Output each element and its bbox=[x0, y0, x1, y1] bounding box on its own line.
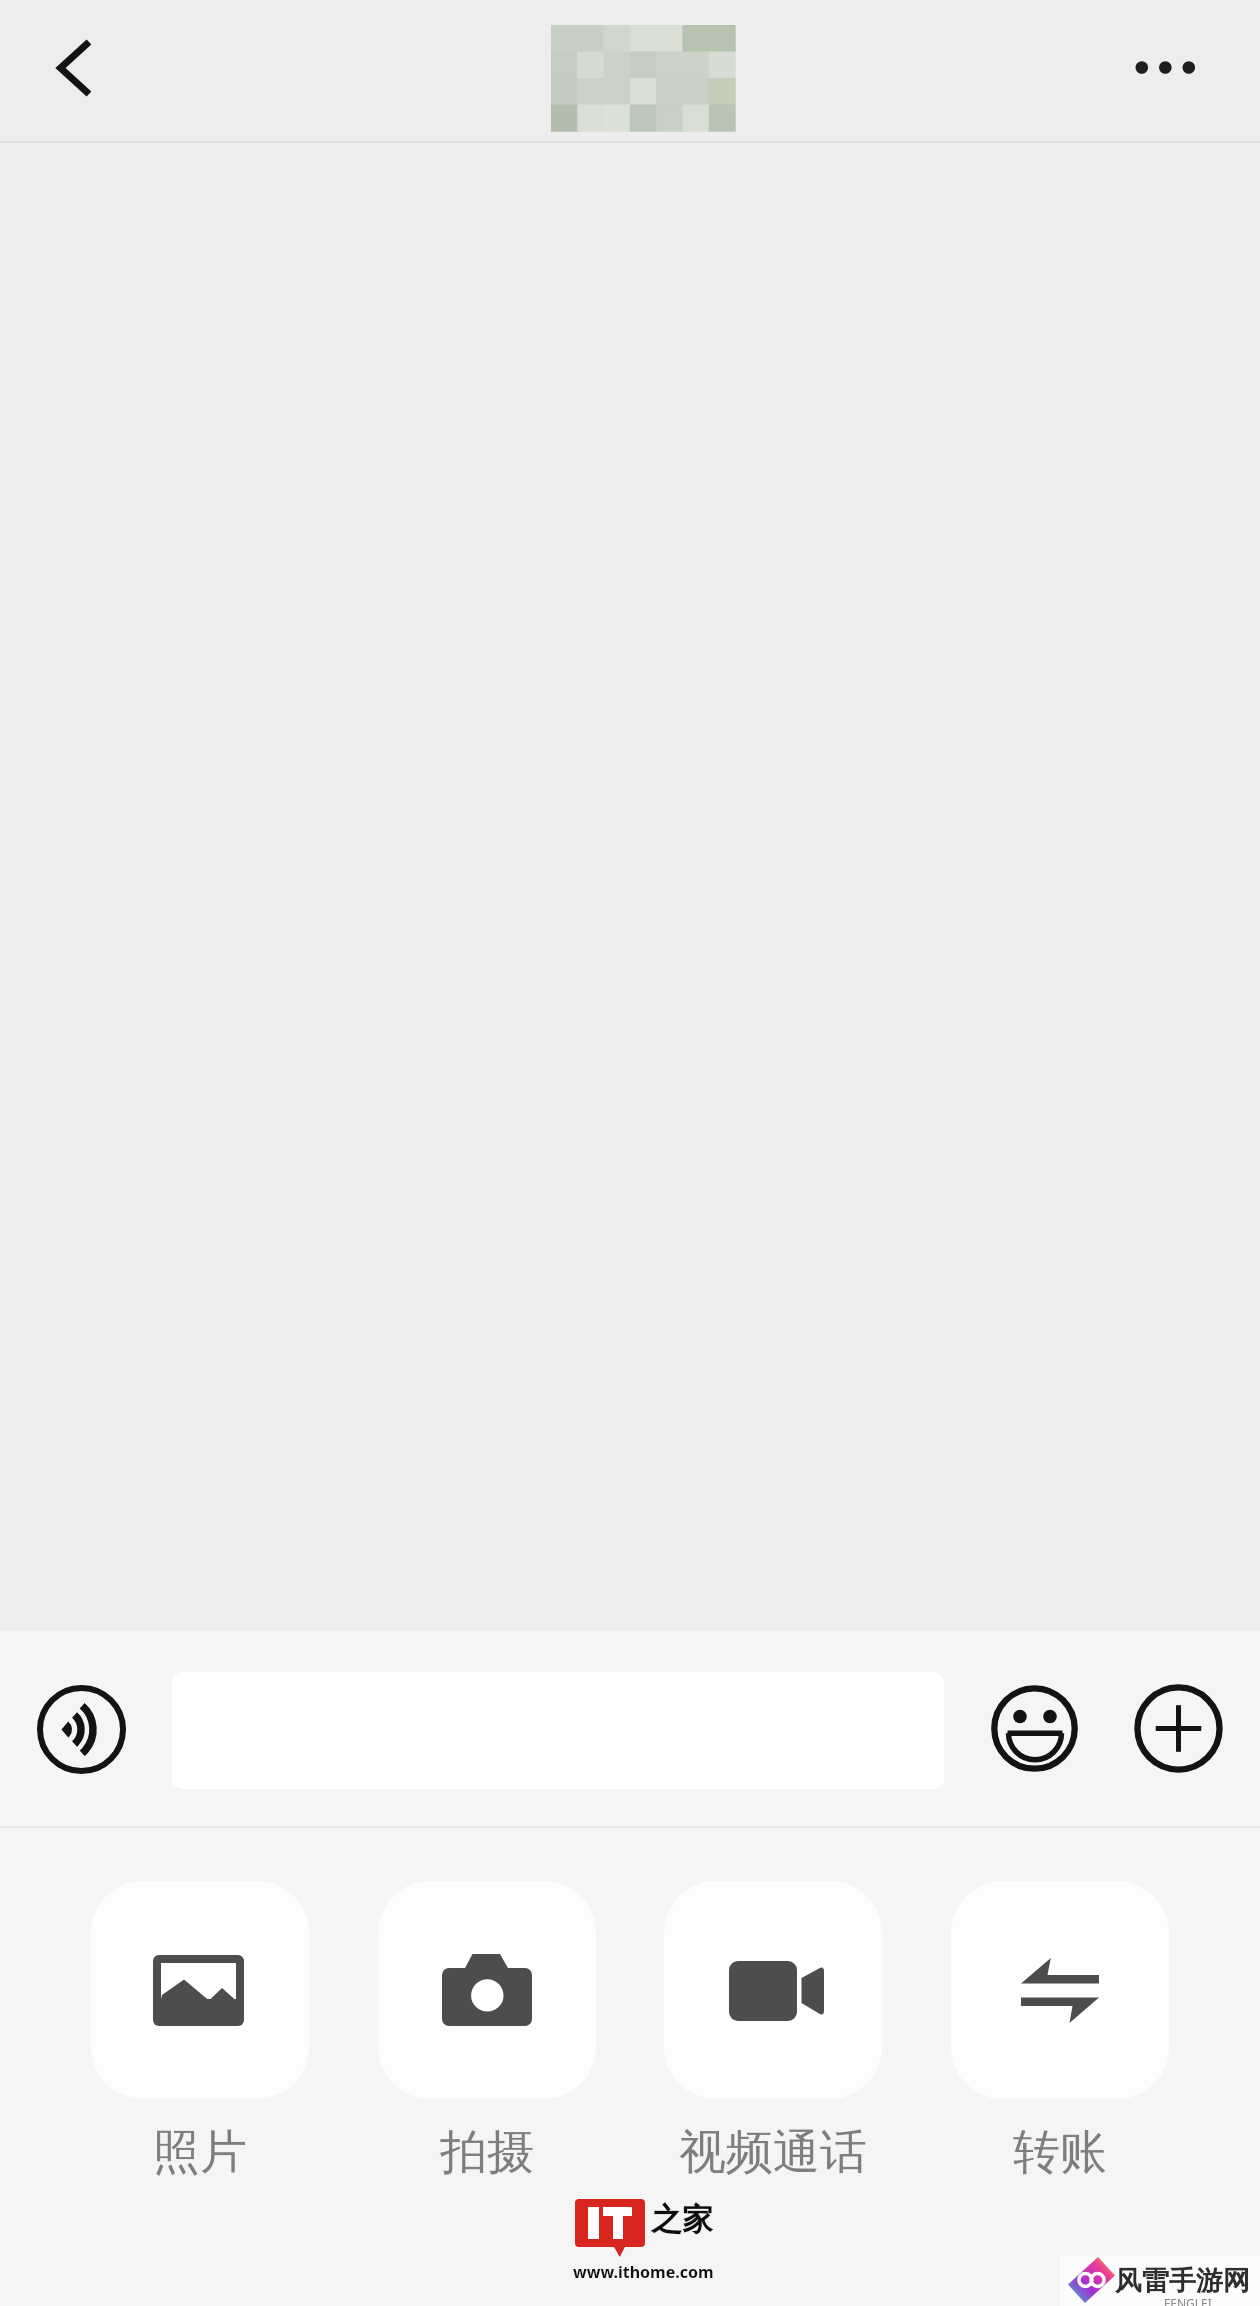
button[interactable]: 转账 bbox=[951, 1881, 1169, 2182]
button[interactable]: 视频通话 bbox=[664, 1881, 882, 2182]
button[interactable]: More functions bbox=[1134, 1684, 1223, 1773]
staticText: FENGLEI bbox=[1164, 2295, 1212, 2306]
button[interactable]: Voice message bbox=[37, 1685, 126, 1774]
staticText: 之家 bbox=[651, 2200, 713, 2239]
button[interactable]: Emoji bbox=[990, 1684, 1079, 1773]
staticText: 视频通话 bbox=[679, 2123, 867, 2182]
staticText: www.ithome.com bbox=[573, 2261, 714, 2283]
button[interactable]: 拍摄 bbox=[378, 1881, 596, 2182]
staticText: 拍摄 bbox=[440, 2123, 534, 2182]
button[interactable]: 照片 bbox=[91, 1881, 309, 2182]
staticText: 风雷手游网 bbox=[1115, 2264, 1250, 2298]
button[interactable]: More options bbox=[1110, 13, 1232, 123]
staticText: 照片 bbox=[153, 2123, 247, 2182]
staticText: 转账 bbox=[1013, 2123, 1107, 2182]
button[interactable]: Back bbox=[11, 13, 133, 123]
